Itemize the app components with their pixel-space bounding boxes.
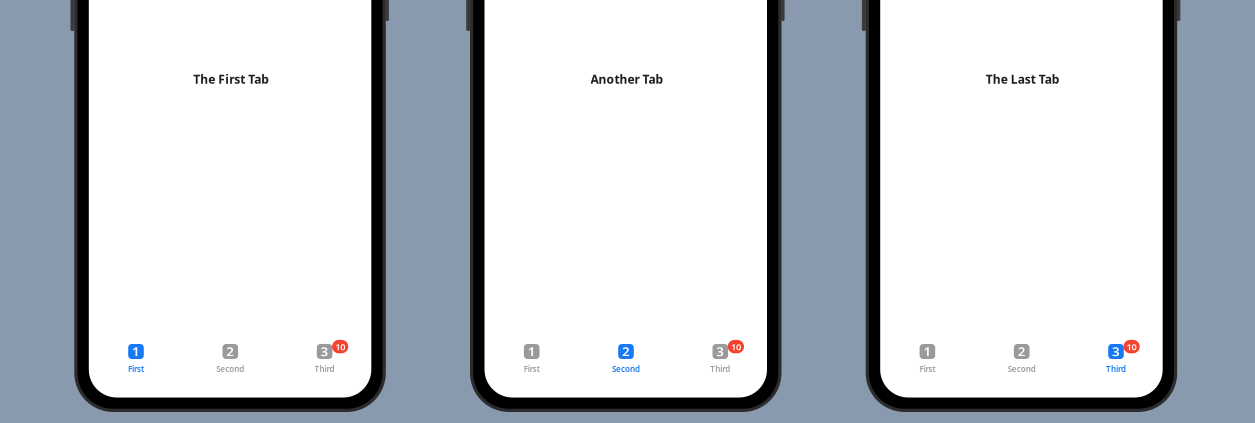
staticText: Second xyxy=(612,364,640,374)
staticText: 2 xyxy=(622,342,630,360)
staticText: First xyxy=(128,364,144,374)
staticText: 2 xyxy=(226,342,234,360)
staticText: The First Tab xyxy=(193,71,269,87)
button[interactable]: First xyxy=(485,344,579,374)
staticText: 1 xyxy=(528,342,536,360)
staticText: 1 xyxy=(132,342,140,360)
staticText: 3 xyxy=(716,342,724,360)
button[interactable]: First xyxy=(880,344,974,374)
staticText: 3 xyxy=(321,342,329,360)
button[interactable]: First xyxy=(89,344,183,374)
staticText: First xyxy=(524,364,540,374)
staticText: Second xyxy=(216,364,244,374)
staticText: Second xyxy=(1008,364,1036,374)
staticText: 2 xyxy=(1018,342,1026,360)
button[interactable]: Second xyxy=(579,344,673,374)
staticText: 10 xyxy=(1127,340,1137,353)
staticText: Third xyxy=(1106,364,1126,374)
button[interactable]: Second xyxy=(975,344,1069,374)
button[interactable]: Second xyxy=(183,344,277,374)
staticText: 3 xyxy=(1112,342,1120,360)
staticText: First xyxy=(919,364,935,374)
staticText: The Last Tab xyxy=(986,71,1060,87)
staticText: 1 xyxy=(923,342,931,360)
staticText: 10 xyxy=(335,340,345,353)
button[interactable]: Third, 10 new items xyxy=(673,344,767,374)
staticText: Another Tab xyxy=(590,71,663,87)
staticText: Third xyxy=(315,364,335,374)
button[interactable]: Third, 10 new items xyxy=(278,344,372,374)
staticText: 10 xyxy=(731,340,741,353)
staticText: Third xyxy=(710,364,730,374)
button[interactable]: Third, 10 new items xyxy=(1069,344,1163,374)
